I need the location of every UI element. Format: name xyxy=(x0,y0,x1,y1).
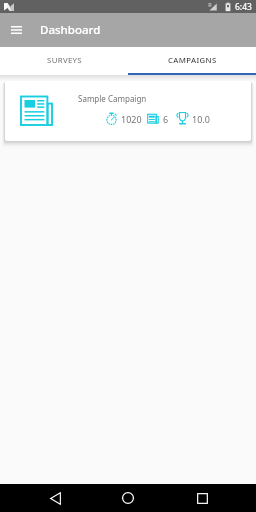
staticText: SURVEYS xyxy=(47,55,82,66)
button[interactable]: Recent apps xyxy=(188,484,216,512)
button[interactable]: Back xyxy=(41,484,69,512)
staticText: 6 xyxy=(163,113,169,125)
staticText: 10.0 xyxy=(192,113,210,125)
staticText: CAMPAIGNS xyxy=(168,55,217,66)
staticText: Sample Campaign xyxy=(78,93,147,104)
staticText: Dashboard xyxy=(40,22,101,38)
button[interactable]: CAMPAIGNS xyxy=(128,47,256,73)
button[interactable]: Open navigation menu xyxy=(0,13,33,47)
button[interactable]: Sample Campaign xyxy=(5,81,251,141)
staticText: 1020 xyxy=(121,113,142,125)
staticText: 6:43 xyxy=(235,1,252,13)
button[interactable]: SURVEYS xyxy=(0,47,128,73)
button[interactable]: Home xyxy=(114,484,142,512)
